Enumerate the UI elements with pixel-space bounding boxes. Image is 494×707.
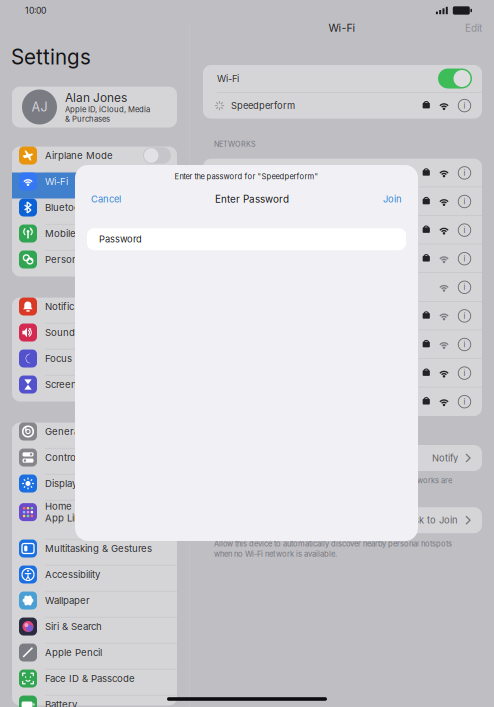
button[interactable]: i — [203, 216, 482, 244]
staticText: i — [463, 225, 465, 235]
staticText: Mobile Data — [45, 228, 99, 239]
staticText: Apple Pencil — [45, 647, 102, 658]
staticText: Multitasking & Gestures — [45, 543, 152, 554]
staticText: Bluetooth — [45, 202, 89, 213]
button[interactable]: i — [203, 159, 482, 187]
staticText: General — [45, 426, 81, 437]
button[interactable]: Sounds — [12, 323, 177, 349]
staticText: 10:00 — [25, 5, 46, 16]
button[interactable]: Join — [367, 187, 418, 211]
button[interactable]: i — [203, 187, 482, 216]
staticText: Siri & Search — [45, 621, 102, 632]
staticText: i — [463, 397, 465, 406]
button[interactable]: Wallpaper — [12, 591, 177, 617]
staticText: Display & Brightness — [45, 478, 138, 489]
staticText: Control Centre — [45, 452, 112, 463]
button[interactable]: Ask to Join — [190, 507, 494, 533]
staticText: Enter Password — [215, 193, 289, 205]
staticText: Face ID & Passcode — [45, 673, 135, 684]
staticText: Wallpaper — [45, 595, 90, 606]
button[interactable]: Control Centre — [12, 448, 177, 474]
staticText: App Library — [45, 512, 98, 524]
button[interactable]: Battery — [12, 695, 177, 705]
staticText: Personal Hotspot — [45, 254, 124, 265]
button[interactable]: Mobile Data — [12, 224, 177, 250]
button[interactable]: Notifications — [12, 297, 177, 323]
staticText: Home Screen & — [45, 500, 116, 512]
button[interactable]: i — [203, 330, 482, 359]
button[interactable]: Display & Brightness — [12, 474, 177, 500]
staticText: Notify — [432, 452, 458, 464]
staticText: AJ — [31, 99, 47, 114]
staticText: Accessibility — [45, 569, 100, 580]
staticText: Allow this device to automatically disco… — [214, 539, 452, 548]
staticText: i — [463, 340, 465, 349]
staticText: i — [463, 311, 465, 321]
staticText: Screen Time — [45, 379, 102, 390]
staticText: Speedperform — [231, 100, 295, 111]
button[interactable]: i — [203, 387, 482, 416]
button[interactable]: i — [203, 302, 482, 330]
button[interactable]: Wi-Fi — [12, 172, 177, 198]
staticText: Edit — [465, 22, 482, 34]
button[interactable]: Face ID & Passcode — [12, 669, 177, 695]
button[interactable]: Password — [75, 211, 418, 250]
button[interactable]: Airplane Mode — [12, 146, 177, 172]
staticText: Ask to Join — [408, 514, 458, 526]
staticText: when no Wi-Fi network is available. — [214, 549, 337, 559]
staticText: Airplane Mode — [45, 150, 113, 161]
staticText: Notifications — [45, 301, 102, 312]
staticText: Alan Jones — [65, 90, 127, 105]
button[interactable]: Notify — [190, 445, 494, 471]
staticText: i — [463, 101, 465, 110]
staticText: NETWORKS — [214, 140, 256, 149]
staticText: Focus — [45, 353, 72, 364]
staticText: i — [463, 168, 465, 178]
button[interactable]: Accessibility — [12, 565, 177, 591]
staticText: Password — [99, 233, 142, 245]
staticText: Apple ID, iCloud, Media — [65, 105, 150, 114]
staticText: i — [463, 197, 465, 206]
button[interactable]: Personal Hotspot — [12, 250, 177, 276]
button[interactable]: i — [203, 273, 482, 302]
staticText: i — [463, 254, 465, 263]
button[interactable]: Focus — [12, 349, 177, 375]
staticText: Sounds — [45, 327, 80, 338]
button[interactable]: AJ — [0, 86, 189, 127]
staticText: & Purchases — [65, 114, 110, 123]
staticText: Join — [383, 193, 402, 205]
button[interactable]: Edit — [453, 16, 494, 40]
staticText: i — [463, 283, 465, 292]
button[interactable]: Bluetooth — [12, 198, 177, 224]
staticText: i — [463, 368, 465, 378]
staticText: Enter the password for "Speedperform" — [174, 172, 318, 181]
staticText: Wi-Fi — [217, 73, 239, 84]
staticText: Wi-Fi — [45, 176, 68, 187]
button[interactable]: General — [12, 422, 177, 448]
staticText: Wi-Fi — [328, 22, 355, 34]
button[interactable]: i — [203, 359, 482, 387]
button[interactable]: i — [203, 244, 482, 273]
staticText: Cancel — [91, 193, 121, 205]
staticText: networks are — [406, 476, 452, 485]
button[interactable]: Siri & Search — [12, 617, 177, 643]
staticText: Battery — [45, 699, 77, 707]
button[interactable]: Cancel — [75, 187, 137, 211]
button[interactable]: Screen Time — [12, 375, 177, 401]
button[interactable]: Home Screen & — [12, 500, 177, 539]
staticText: Settings — [11, 44, 91, 69]
button[interactable]: Apple Pencil — [12, 643, 177, 669]
button[interactable]: Multitasking & Gestures — [12, 539, 177, 565]
